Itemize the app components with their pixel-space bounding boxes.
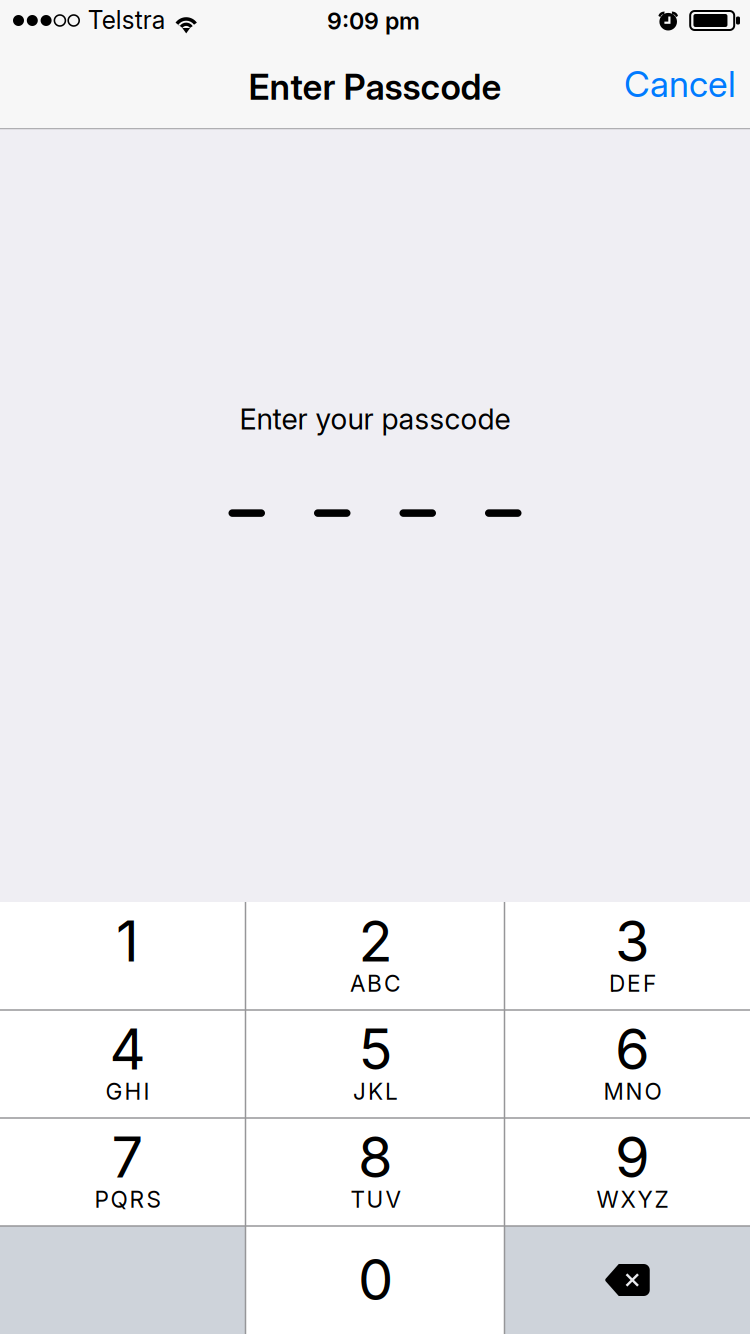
staticText: 5 — [358, 1015, 392, 1083]
staticText: T U V — [350, 1186, 400, 1213]
button[interactable]: 4 — [0, 1010, 245, 1118]
button[interactable]: 5 — [245, 1010, 504, 1118]
staticText: M N O — [603, 1078, 661, 1105]
button[interactable]: 6 — [504, 1010, 750, 1118]
staticText: 4 — [109, 1015, 145, 1083]
staticText: 7 — [111, 1123, 143, 1191]
button[interactable]: 7 — [0, 1118, 245, 1226]
button[interactable]: 3 — [504, 902, 750, 1010]
staticText: D E F — [609, 970, 656, 997]
staticText: Enter Passcode — [248, 66, 501, 108]
staticText: 0 — [358, 1246, 393, 1314]
button[interactable]: 8 — [245, 1118, 504, 1226]
button[interactable]: 2 — [245, 902, 504, 1010]
staticText: P Q R S — [94, 1186, 160, 1213]
staticText: 3 — [615, 907, 650, 975]
staticText: 8 — [358, 1123, 393, 1191]
staticText: A B C — [350, 970, 401, 997]
staticText: 1 — [116, 907, 139, 975]
staticText: W X Y Z — [596, 1186, 668, 1213]
staticText: 9:09 pm — [327, 7, 420, 35]
button[interactable]: 9 — [504, 1118, 750, 1226]
button[interactable]: Delete — [504, 1226, 750, 1334]
staticText: 2 — [358, 907, 392, 975]
button[interactable]: Cancel — [600, 40, 750, 128]
staticText: G H I — [105, 1078, 149, 1105]
staticText: J K L — [353, 1078, 398, 1105]
staticText: Telstra — [88, 5, 166, 35]
staticText: Cancel — [624, 62, 736, 106]
staticText: Enter your passcode — [239, 401, 510, 436]
button[interactable]: 0 — [245, 1226, 504, 1334]
staticText: 6 — [615, 1015, 650, 1083]
staticText: 9 — [615, 1123, 650, 1191]
button[interactable]: 1 — [0, 902, 245, 1010]
